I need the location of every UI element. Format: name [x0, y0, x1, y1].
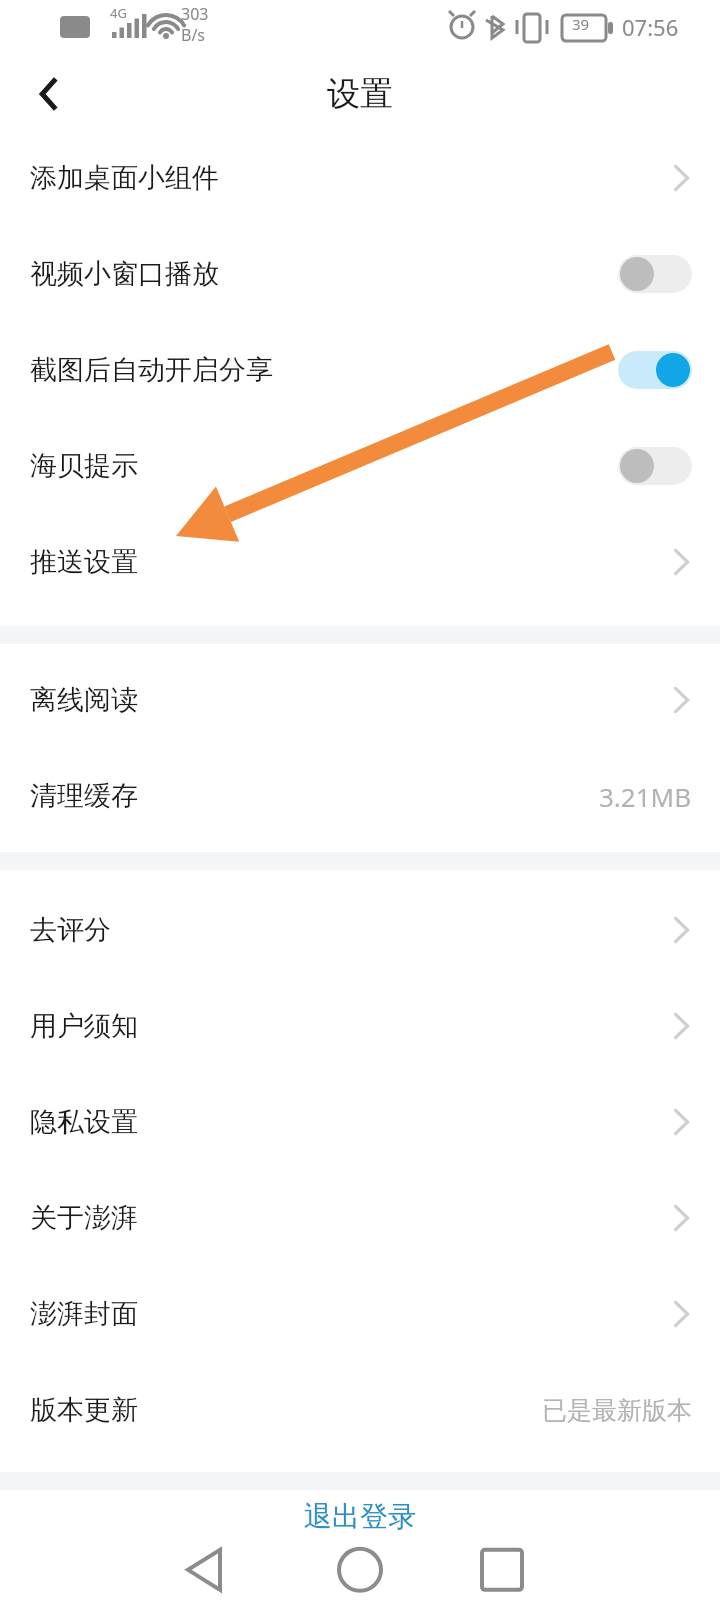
- button[interactable]: 澎湃封面: [0, 1266, 720, 1362]
- button[interactable]: 截图后自动开启分享: [0, 322, 720, 418]
- button[interactable]: Off: [618, 255, 692, 293]
- staticText: 海贝提示: [30, 449, 138, 483]
- button[interactable]: 清理缓存: [0, 748, 720, 844]
- staticText: 已是最新版本: [542, 1395, 692, 1426]
- staticText: 隐私设置: [30, 1105, 138, 1139]
- button[interactable]: 隐私设置: [0, 1074, 720, 1170]
- button[interactable]: Back: [18, 62, 82, 126]
- button[interactable]: 添加桌面小组件: [0, 130, 720, 226]
- staticText: 版本更新: [30, 1393, 138, 1427]
- staticText: 用户须知: [30, 1009, 138, 1043]
- button[interactable]: 版本更新: [0, 1362, 720, 1458]
- button[interactable]: 关于澎湃: [0, 1170, 720, 1266]
- staticText: 3.21MB: [599, 779, 692, 814]
- button[interactable]: On: [618, 351, 692, 389]
- button[interactable]: 去评分: [0, 882, 720, 978]
- button[interactable]: 用户须知: [0, 978, 720, 1074]
- staticText: 添加桌面小组件: [30, 161, 219, 195]
- staticText: 设置: [327, 73, 393, 115]
- staticText: 离线阅读: [30, 683, 138, 717]
- staticText: 截图后自动开启分享: [30, 353, 273, 387]
- staticText: 关于澎湃: [30, 1201, 138, 1235]
- button[interactable]: 海贝提示: [0, 418, 720, 514]
- staticText: 去评分: [30, 913, 111, 947]
- button[interactable]: 推送设置: [0, 514, 720, 610]
- button[interactable]: 离线阅读: [0, 652, 720, 748]
- staticText: 推送设置: [30, 545, 138, 579]
- staticText: 澎湃封面: [30, 1297, 138, 1331]
- staticText: 07:56: [622, 12, 679, 42]
- staticText: B/s: [181, 24, 206, 46]
- staticText: 退出登录: [304, 1499, 416, 1534]
- staticText: 39: [572, 14, 590, 34]
- staticText: 清理缓存: [30, 779, 138, 813]
- button[interactable]: 视频小窗口播放: [0, 226, 720, 322]
- button[interactable]: 退出登录: [0, 1490, 720, 1542]
- staticText: 303: [181, 3, 209, 25]
- staticText: 视频小窗口播放: [30, 257, 219, 291]
- button[interactable]: Off: [618, 447, 692, 485]
- staticText: 4G: [110, 4, 127, 22]
